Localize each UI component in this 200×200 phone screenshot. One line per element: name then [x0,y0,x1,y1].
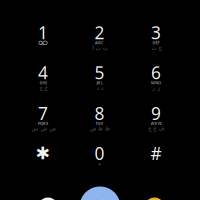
staticText: ف غ ع [148,125,164,131]
button[interactable]: 8 [73,100,125,138]
button[interactable]: 0 [73,140,125,178]
staticText: + [98,161,100,166]
staticText: 6 [151,61,161,84]
staticText: 7 [38,102,48,125]
staticText: MNO [151,80,161,85]
staticText: # [150,142,161,165]
button[interactable]: 9 [130,100,182,138]
staticText: 4 [38,61,48,84]
button[interactable]: 1 [17,20,69,58]
button[interactable]: 5 [73,60,125,98]
button[interactable]: # [130,140,182,178]
button[interactable]: 4 [17,60,69,98]
button[interactable]: 2 [73,20,125,58]
staticText: ظ ط ض [89,125,109,131]
staticText: PQRS [38,121,48,126]
staticText: WXYZ [150,121,161,126]
staticText: ج ث [151,45,161,51]
staticText: JKL [96,80,102,85]
staticText: 3 [151,21,161,44]
button[interactable]: 3 [130,20,182,58]
staticText: 1 [38,21,48,44]
staticText: ص ش س [31,125,55,131]
button[interactable]: Favorites [144,197,164,200]
staticText: 0 [94,142,104,165]
staticText: 8 [94,102,104,125]
staticText: ز ر [152,85,160,91]
staticText: ت ب أ [92,45,107,51]
button[interactable]: 6 [130,60,182,98]
staticText: ذ د [96,85,102,91]
staticText: 5 [94,61,104,84]
staticText: GHI [39,80,46,85]
staticText: DEF [152,40,159,45]
button[interactable]: Contacts [38,197,58,200]
staticText: 2 [94,21,104,44]
staticText: ✱ [35,143,50,163]
staticText: خ ح [39,85,47,91]
button[interactable]: ✱ [17,140,69,178]
staticText: TUV [95,121,103,126]
staticText: ABC [95,40,104,45]
staticText: 9 [151,102,161,125]
button[interactable]: Call [79,186,120,200]
button[interactable]: 7 [17,100,69,138]
